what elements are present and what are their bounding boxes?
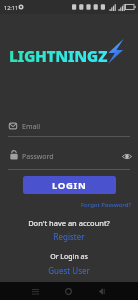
staticText: 12:11 [4,4,19,11]
button[interactable]: Back [95,285,108,298]
button[interactable]: Email [22,119,138,134]
button[interactable]: Show password [120,150,133,163]
button[interactable]: LOGIN [23,176,116,194]
staticText: Password [22,152,54,162]
button[interactable]: Password [22,149,138,164]
staticText: LIGHTNINGZ [9,45,107,66]
button[interactable]: Home [62,285,75,298]
staticText: Or Login as [50,252,88,262]
button[interactable]: Register [0,229,138,243]
staticText: Guest User [48,265,90,276]
staticText: Forgot Password? [81,201,131,209]
button[interactable]: Guest User [0,263,138,277]
staticText: LOGIN [52,179,87,192]
button[interactable]: Recent apps [29,285,42,298]
button[interactable]: Forgot Password? [0,199,131,211]
staticText: Email [22,122,40,132]
staticText: Register [53,231,85,242]
staticText: Don't have an account? [28,218,110,228]
